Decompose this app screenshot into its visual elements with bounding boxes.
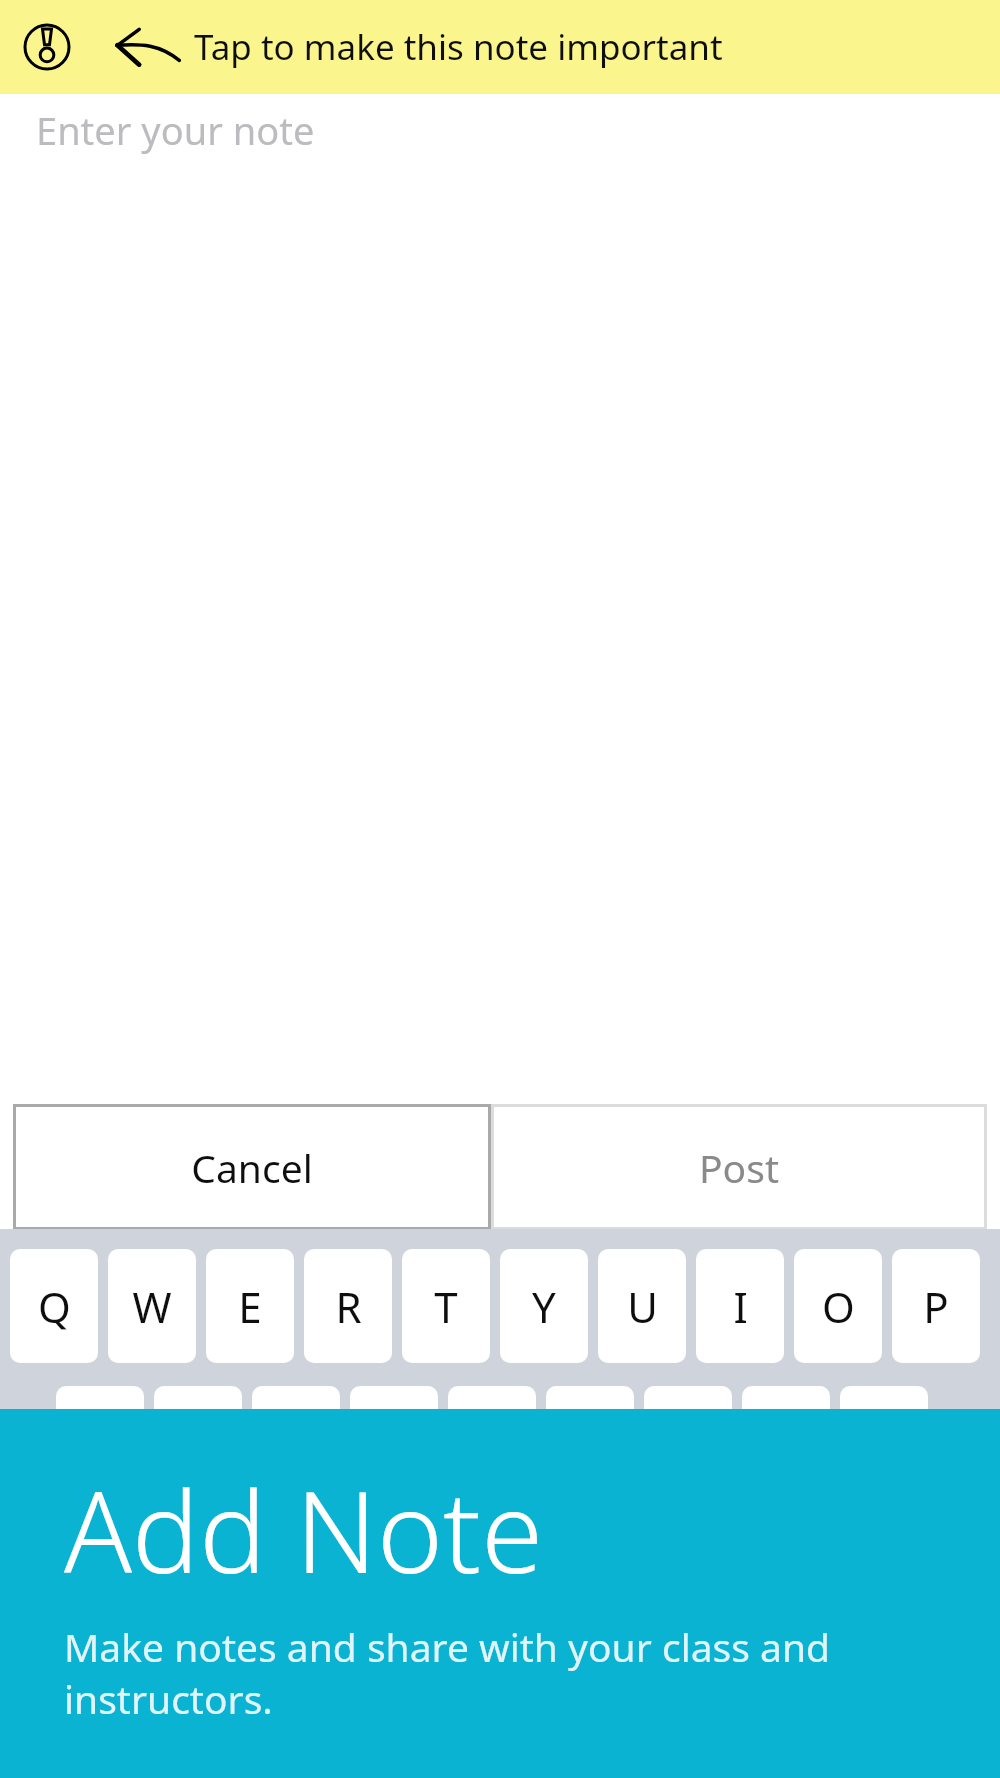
staticText: T [434, 1278, 458, 1335]
button[interactable]: Post [491, 1104, 987, 1230]
button[interactable]: G [448, 1386, 536, 1409]
staticText: E [238, 1278, 262, 1335]
staticText: R [335, 1278, 362, 1335]
staticText: Tap to make this note important [194, 23, 723, 71]
staticText: I [733, 1278, 748, 1335]
staticText: Enter your note [36, 104, 315, 156]
staticText: Post [699, 1141, 779, 1194]
button[interactable]: Q [10, 1249, 98, 1363]
button[interactable]: I [696, 1249, 784, 1363]
staticText: Make notes and share with your class and… [64, 1620, 960, 1725]
staticText: P [923, 1278, 949, 1335]
staticText: Q [38, 1278, 71, 1335]
button[interactable]: A [56, 1386, 144, 1409]
button[interactable]: J [644, 1386, 732, 1409]
button[interactable]: Cancel [13, 1104, 491, 1230]
other: Back [112, 26, 180, 68]
staticText: O [822, 1278, 855, 1335]
button[interactable]: E [206, 1249, 294, 1363]
button[interactable]: U [598, 1249, 686, 1363]
staticText: Add Note [64, 1453, 544, 1606]
staticText: Cancel [191, 1141, 313, 1194]
other: Mark important [22, 22, 72, 72]
button[interactable]: H [546, 1386, 634, 1409]
button[interactable]: R [304, 1249, 392, 1363]
staticText: U [627, 1278, 658, 1335]
button[interactable]: Mark important [0, 0, 1000, 94]
button[interactable]: O [794, 1249, 882, 1363]
button[interactable]: F [350, 1386, 438, 1409]
button[interactable]: W [108, 1249, 196, 1363]
button[interactable]: L [840, 1386, 928, 1409]
staticText: Y [532, 1278, 556, 1335]
button[interactable]: D [252, 1386, 340, 1409]
button[interactable]: K [742, 1386, 830, 1409]
button[interactable]: Y [500, 1249, 588, 1363]
button[interactable]: S [154, 1386, 242, 1409]
button[interactable]: P [892, 1249, 980, 1363]
button[interactable]: T [402, 1249, 490, 1363]
staticText: W [132, 1278, 172, 1335]
